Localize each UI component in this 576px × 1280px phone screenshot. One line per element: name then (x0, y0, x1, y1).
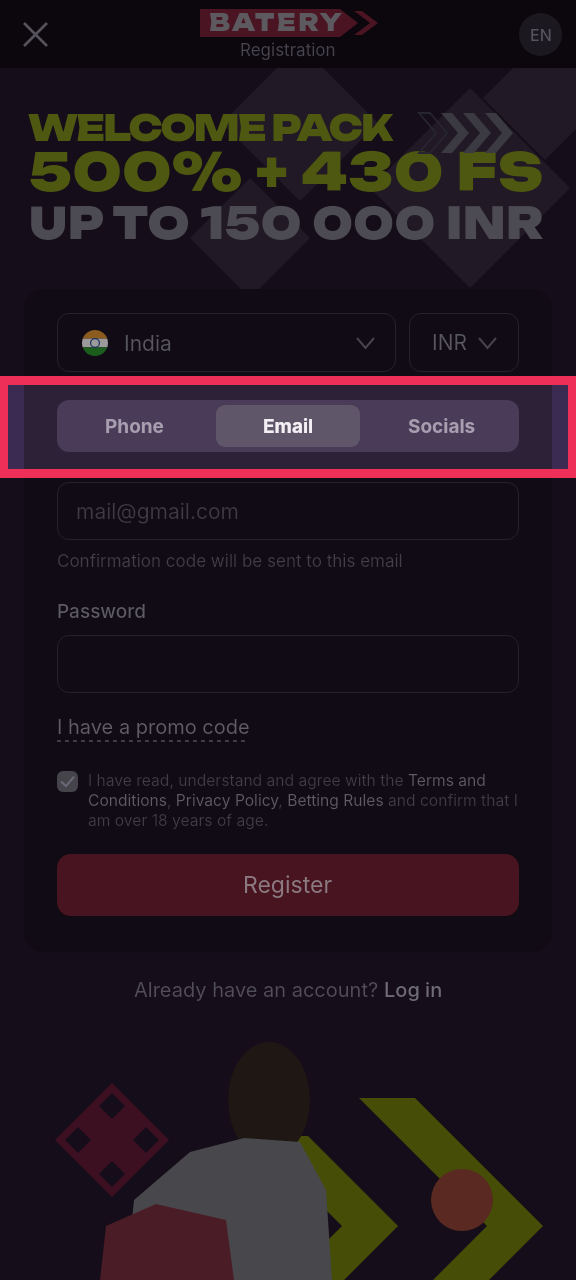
button[interactable]: Email (57, 482, 519, 540)
staticText: Registration (240, 40, 336, 61)
staticText: Socials (408, 415, 476, 438)
staticText: EN (530, 25, 552, 44)
button[interactable]: Register (57, 854, 519, 916)
staticText: UP TO 150 000 INR (29, 196, 544, 249)
staticText: INR (432, 330, 467, 355)
button[interactable]: Already have an account? (134, 978, 443, 1002)
button[interactable]: Language EN (519, 13, 562, 56)
staticText: Phone (105, 415, 164, 438)
button[interactable]: Close (12, 11, 58, 57)
staticText: WELCOME PACK (28, 105, 392, 150)
staticText: Already have an account? (134, 978, 384, 1002)
button[interactable]: INR (409, 313, 519, 372)
staticText: mail@gmail.com (76, 499, 239, 524)
button[interactable]: Phone (62, 405, 206, 447)
staticText: Password (57, 600, 147, 623)
staticText: I have a promo code (57, 715, 250, 739)
button[interactable]: Email (216, 405, 360, 447)
button[interactable]: Accept terms (57, 771, 78, 792)
staticText: 500% + 430 FS (29, 139, 544, 203)
button[interactable]: Socials (370, 405, 514, 447)
staticText: Log in (384, 978, 443, 1002)
staticText: India (124, 331, 172, 356)
staticText: Confirmation code will be sent to this e… (57, 551, 403, 572)
staticText: Register (243, 871, 333, 899)
button[interactable]: Password (57, 635, 519, 693)
button[interactable]: I have a promo code (57, 715, 287, 742)
button[interactable]: India (57, 313, 396, 372)
staticText: Email (263, 415, 314, 438)
staticText: BATERY (209, 8, 345, 36)
staticText: I have read, understand and agree with t… (88, 771, 519, 830)
